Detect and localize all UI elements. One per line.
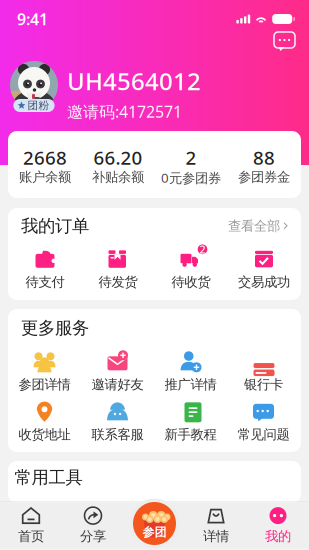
staticText: 2668 xyxy=(23,145,67,170)
button[interactable]: 待发货 xyxy=(81,244,154,294)
staticText: 我的订单 xyxy=(21,215,89,237)
staticText: 88 xyxy=(253,145,275,170)
staticText: 参团券金 xyxy=(238,169,290,185)
staticText: 参团详情 xyxy=(18,376,70,393)
button[interactable]: 常见问题 xyxy=(227,397,300,447)
button[interactable]: 参团详情 xyxy=(8,347,81,397)
staticText: 邀请好友 xyxy=(91,376,143,393)
button[interactable]: 2668 xyxy=(8,131,81,198)
staticText: UH4564012 xyxy=(67,65,201,97)
staticText: 银行卡 xyxy=(244,376,283,393)
staticText: 交易成功 xyxy=(238,274,290,290)
staticText: 首页 xyxy=(18,528,44,544)
button[interactable]: 消息 xyxy=(273,31,296,53)
staticText: 66.20 xyxy=(93,145,142,170)
staticText: 2 xyxy=(199,242,205,256)
button[interactable]: 新手教程 xyxy=(154,397,227,447)
staticText: 0元参团券 xyxy=(161,169,221,186)
staticText: 联系客服 xyxy=(91,426,143,443)
button[interactable]: 详情 xyxy=(185,502,247,548)
staticText: 待发货 xyxy=(98,274,137,290)
button[interactable]: 银行卡 xyxy=(227,347,300,397)
staticText: 待支付 xyxy=(25,274,64,290)
button[interactable]: 2 xyxy=(154,131,227,198)
staticText: 分享 xyxy=(80,528,106,544)
staticText: 2 xyxy=(185,145,196,170)
staticText: 待收货 xyxy=(171,274,210,290)
staticText: 补贴余额 xyxy=(92,169,144,185)
staticText: 我的 xyxy=(265,528,291,544)
button[interactable]: 2 xyxy=(154,244,227,294)
button[interactable]: 待支付 xyxy=(8,244,81,294)
button[interactable]: 88 xyxy=(227,131,300,198)
staticText: 查看全部 xyxy=(228,218,280,234)
staticText: 详情 xyxy=(203,528,229,544)
staticText: 团粉 xyxy=(28,99,50,112)
button[interactable]: 首页 xyxy=(0,502,62,548)
button[interactable]: 参团 xyxy=(124,502,185,548)
button[interactable]: 交易成功 xyxy=(227,244,300,294)
staticText: 新手教程 xyxy=(164,426,216,443)
staticText: 更多服务 xyxy=(21,317,89,339)
button[interactable]: 邀请好友 xyxy=(81,347,154,397)
button[interactable]: 收货地址 xyxy=(8,397,81,447)
staticText: 邀请码:4172571 xyxy=(67,101,182,122)
staticText: 推广详情 xyxy=(164,376,216,393)
button[interactable]: 联系客服 xyxy=(81,397,154,447)
button[interactable]: 66.20 xyxy=(81,131,154,198)
button[interactable]: 参团 xyxy=(129,498,179,548)
staticText: 收货地址 xyxy=(18,426,70,443)
staticText: 常见问题 xyxy=(237,426,289,443)
button[interactable]: 推广详情 xyxy=(154,347,227,397)
staticText: 参团 xyxy=(142,525,166,539)
staticText: 常用工具 xyxy=(14,467,82,488)
staticText: 账户余额 xyxy=(19,169,71,185)
staticText: 9:41 xyxy=(17,8,48,30)
button[interactable]: 分享 xyxy=(62,502,124,548)
button[interactable]: 我的 xyxy=(247,502,309,548)
button[interactable]: 查看全部 xyxy=(228,218,288,234)
